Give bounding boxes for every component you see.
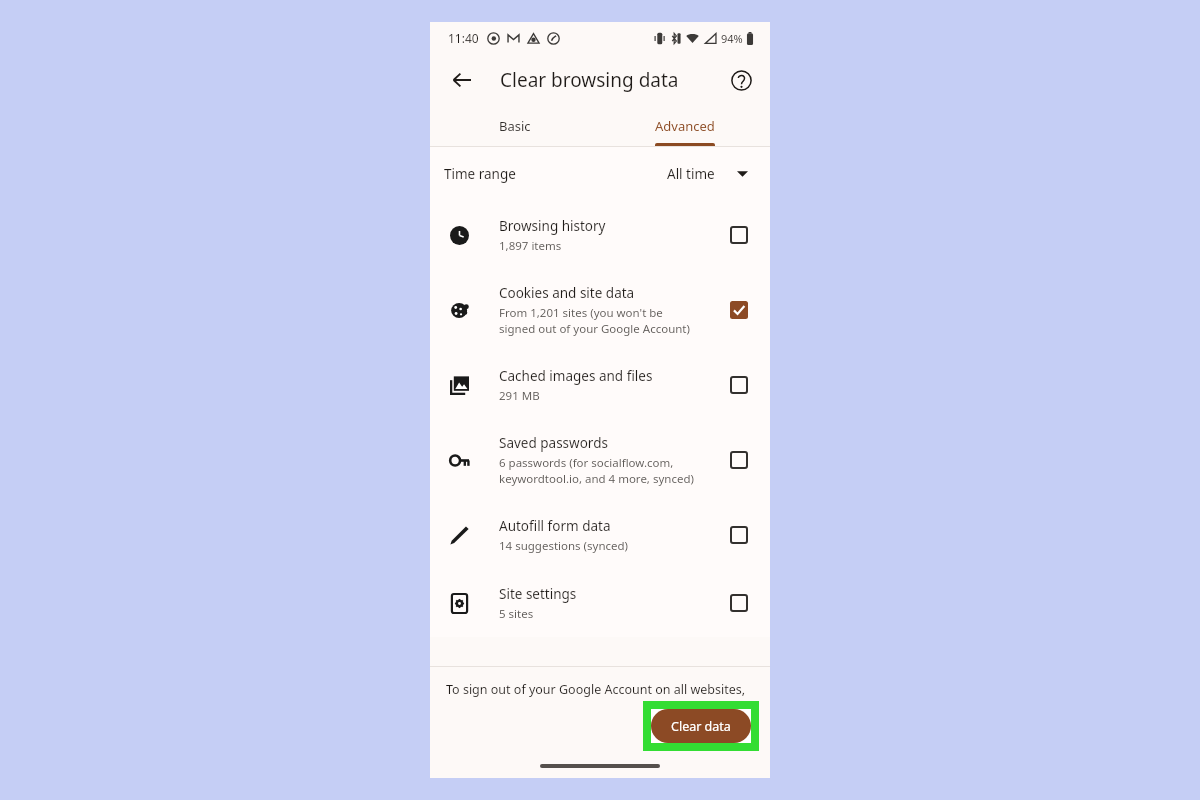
staticText: 11:40 xyxy=(448,30,479,46)
staticText: Clear data xyxy=(671,718,731,735)
button[interactable]: Browsing history checkbox xyxy=(722,218,756,252)
button[interactable]: Help xyxy=(722,61,760,99)
staticText: Autofill form data xyxy=(499,517,611,535)
staticText: From 1,201 sites (you won't be xyxy=(499,305,663,321)
button[interactable]: Site settings checkbox xyxy=(722,586,756,620)
button[interactable]: Autofill form data checkbox xyxy=(722,518,756,552)
staticText: 1,897 items xyxy=(499,238,562,254)
staticText: 5 sites xyxy=(499,606,534,622)
staticText: Browsing history xyxy=(499,217,606,235)
button[interactable]: Site settings xyxy=(430,569,770,637)
staticText: Cached images and files xyxy=(499,367,653,385)
button[interactable]: Autofill form data xyxy=(430,501,770,569)
button[interactable]: Advanced xyxy=(600,106,770,146)
button[interactable]: Browsing history xyxy=(430,201,770,269)
staticText: Time range xyxy=(444,165,516,183)
staticText: 94% xyxy=(721,31,743,46)
staticText: 6 passwords (for socialflow.com, xyxy=(499,455,674,471)
button[interactable]: Cookies and site data xyxy=(430,269,770,351)
staticText: signed out of your Google Account) xyxy=(499,321,690,337)
staticText: To sign out of your Google Account on al… xyxy=(446,681,746,698)
staticText: keywordtool.io, and 4 more, synced) xyxy=(499,471,694,487)
button[interactable]: Saved passwords xyxy=(430,419,770,501)
staticText: Site settings xyxy=(499,585,577,603)
button[interactable]: Clear data xyxy=(651,709,751,743)
staticText: Cookies and site data xyxy=(499,284,635,302)
staticText: Saved passwords xyxy=(499,434,608,452)
staticText: Basic xyxy=(499,117,531,135)
staticText: 291 MB xyxy=(499,388,540,404)
button[interactable]: Basic xyxy=(430,106,600,146)
button[interactable]: Saved passwords checkbox xyxy=(722,443,756,477)
button[interactable]: Back xyxy=(442,60,482,100)
button[interactable]: Cached images and files xyxy=(430,351,770,419)
button[interactable]: Cookies and site data checkbox xyxy=(722,293,756,327)
button[interactable]: Time range xyxy=(430,147,770,201)
button[interactable]: Cached images and files checkbox xyxy=(722,368,756,402)
staticText: All time xyxy=(667,165,715,183)
staticText: Advanced xyxy=(655,117,715,135)
staticText: Clear browsing data xyxy=(500,67,679,93)
staticText: 14 suggestions (synced) xyxy=(499,538,629,554)
